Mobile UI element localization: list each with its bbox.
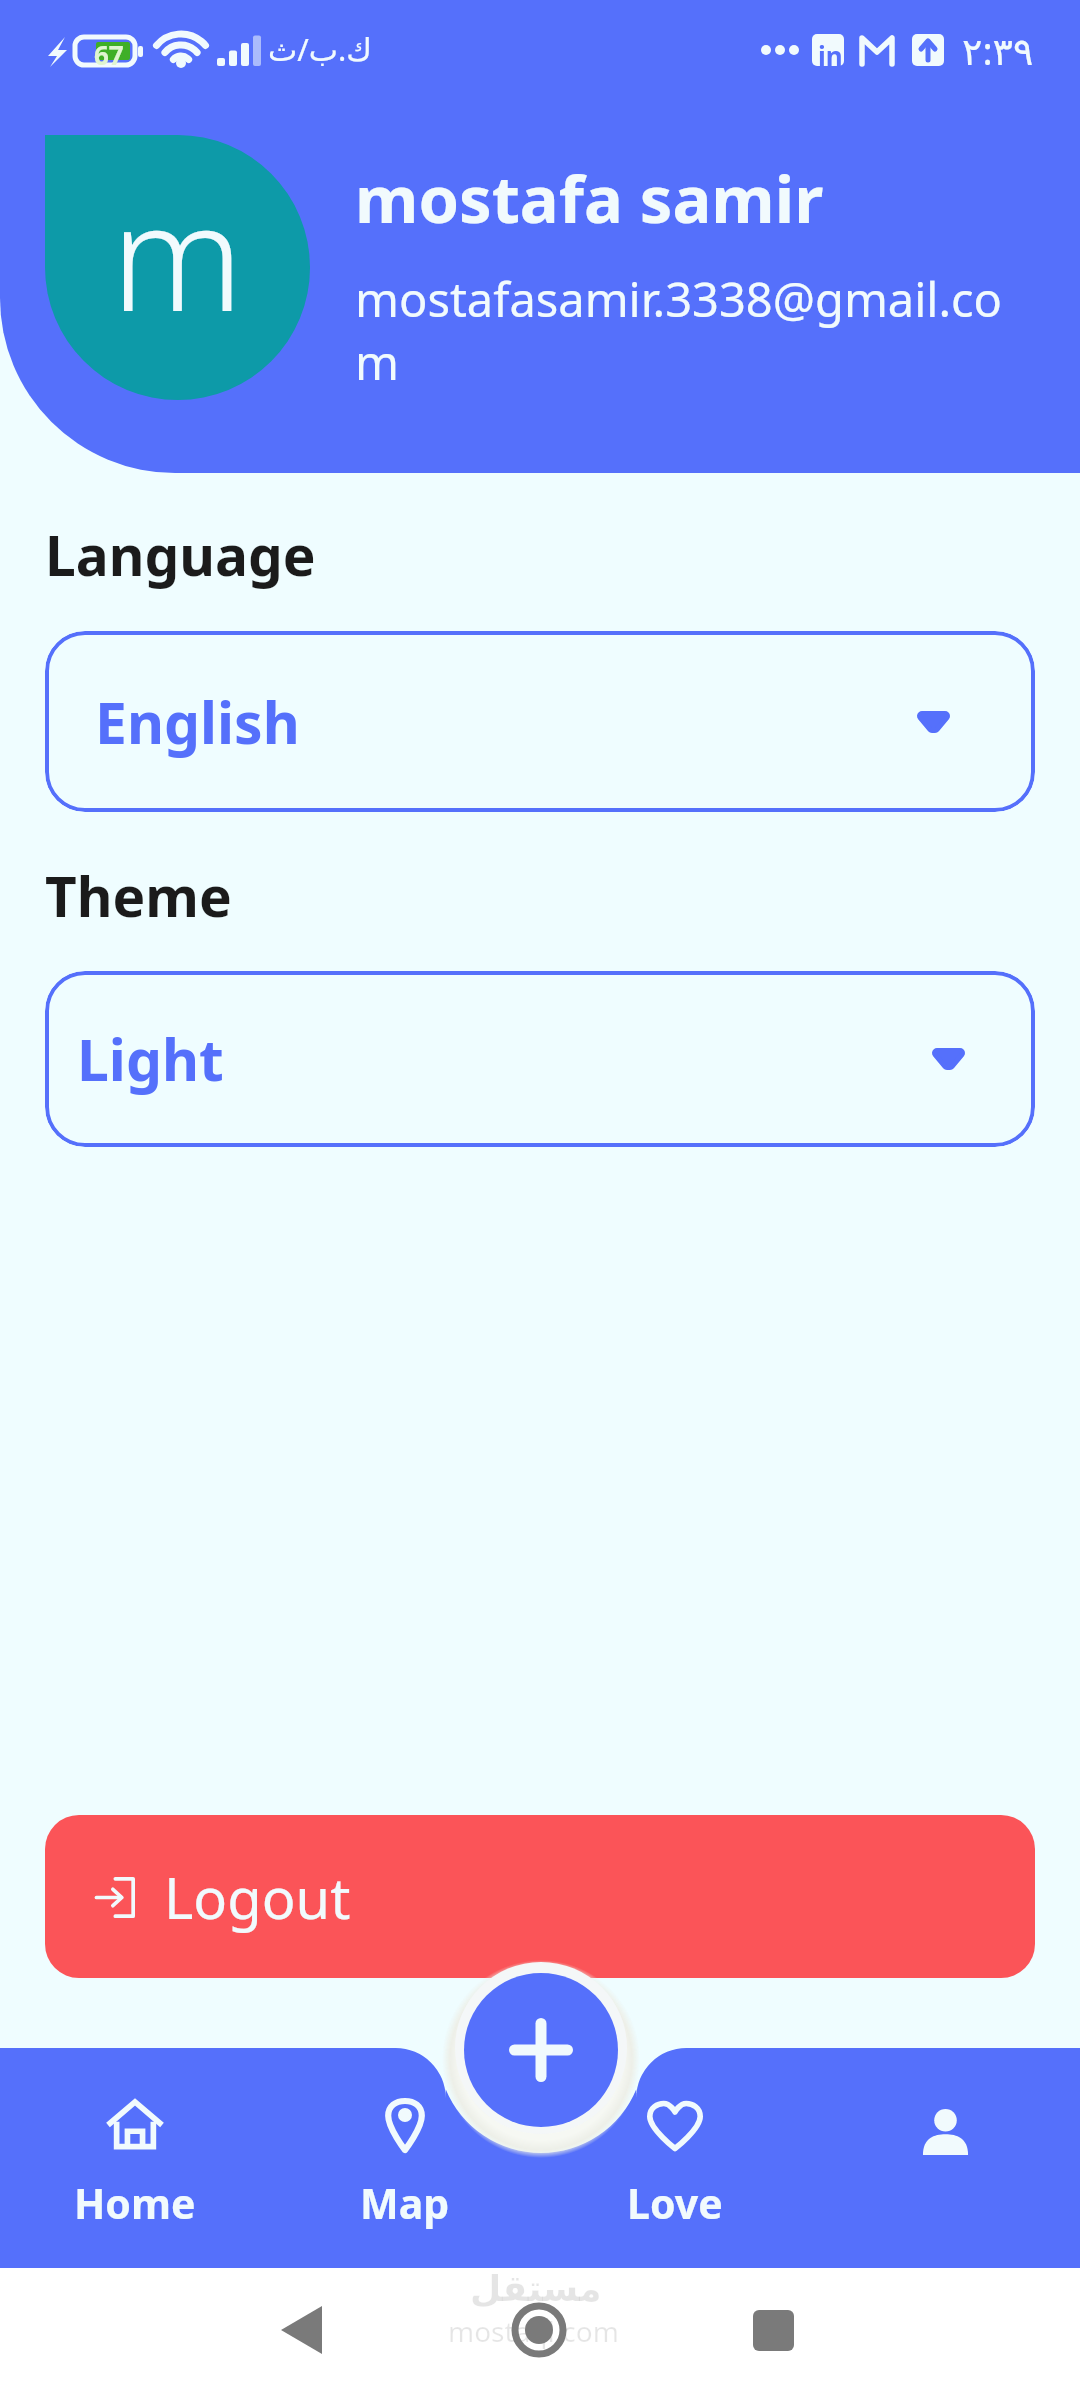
button[interactable]: Add — [464, 1973, 618, 2127]
staticText: Language — [45, 517, 316, 592]
staticText: mostafasamir.3338@gmail.co m — [355, 267, 1003, 393]
staticText: مستقل — [470, 2268, 602, 2310]
staticText: Light — [77, 1020, 224, 1098]
staticText: mostafa samir — [355, 154, 824, 243]
button[interactable]: Home — [0, 2048, 270, 2268]
staticText: Home — [74, 2175, 196, 2231]
button[interactable]: Profile — [810, 2048, 1080, 2268]
staticText: mostaql.com — [448, 2312, 619, 2350]
button[interactable]: Logout — [45, 1815, 1035, 1978]
button[interactable]: Love — [540, 2048, 810, 2268]
staticText: ك.ب/ث — [268, 28, 372, 70]
staticText: ٢:٣٩ — [962, 24, 1034, 76]
staticText: 67 — [94, 37, 124, 72]
staticText: in — [818, 38, 843, 73]
button[interactable]: Map — [270, 2048, 540, 2268]
staticText: English — [95, 683, 300, 761]
button[interactable]: Light — [45, 971, 1035, 1147]
staticText: Love — [627, 2175, 723, 2231]
staticText: Logout — [164, 1859, 351, 1935]
staticText: Map — [360, 2175, 450, 2231]
staticText: Theme — [45, 858, 232, 933]
button[interactable]: English — [45, 631, 1035, 812]
staticText: m — [111, 153, 244, 355]
